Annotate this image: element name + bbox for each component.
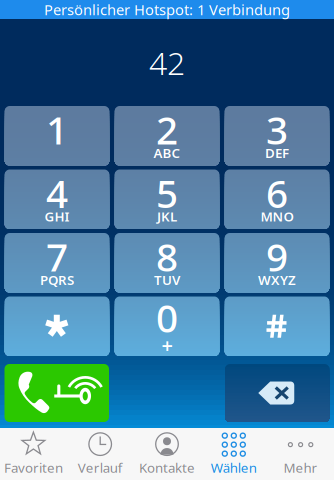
staticText: 2 xyxy=(156,104,178,155)
staticText: + xyxy=(161,332,172,359)
button[interactable]: Anrufen xyxy=(4,364,109,422)
button[interactable]: 6 xyxy=(225,169,329,229)
staticText: DEF xyxy=(265,144,289,162)
staticText: 5 xyxy=(156,167,178,219)
button[interactable]: Kontakte xyxy=(134,428,200,480)
staticText: Kontakte xyxy=(139,459,195,476)
staticText: 8 xyxy=(156,231,178,282)
button[interactable]: 0 xyxy=(115,296,219,356)
staticText: Wählen xyxy=(211,459,257,476)
staticText: 42 xyxy=(149,41,185,84)
staticText: Favoriten xyxy=(4,459,63,476)
staticText: 9 xyxy=(266,231,288,282)
staticText: 3 xyxy=(266,104,288,155)
staticText: Persönlicher Hotspot: 1 Verbindung xyxy=(44,0,290,19)
staticText: 4 xyxy=(46,167,68,219)
button[interactable]: Löschen xyxy=(225,364,329,422)
staticText: MNO xyxy=(260,207,293,225)
staticText: 6 xyxy=(266,167,288,219)
staticText: JKL xyxy=(157,207,177,225)
staticText: 1 xyxy=(46,104,68,155)
button[interactable]: Wählen xyxy=(200,428,267,480)
button[interactable]: 1 xyxy=(5,106,109,165)
button[interactable]: Favoriten xyxy=(0,428,67,480)
button[interactable]: 5 xyxy=(115,169,219,229)
button[interactable]: 7 xyxy=(5,233,109,292)
button[interactable] xyxy=(5,296,109,356)
staticText: Verlauf xyxy=(78,459,123,476)
staticText: GHI xyxy=(44,207,69,225)
button[interactable]: 2 xyxy=(115,106,219,165)
staticText: WXYZ xyxy=(258,271,296,289)
staticText: Mehr xyxy=(284,459,318,476)
staticText: PQRS xyxy=(40,271,74,289)
staticText: 7 xyxy=(46,231,68,282)
staticText: ABC xyxy=(153,144,180,162)
button[interactable]: 8 xyxy=(115,233,219,292)
button[interactable]: 3 xyxy=(225,106,329,165)
button[interactable]: Verlauf xyxy=(67,428,134,480)
button[interactable]: Mehr xyxy=(267,428,334,480)
staticText: TUV xyxy=(154,271,180,289)
staticText: 0 xyxy=(156,292,178,343)
button[interactable] xyxy=(225,296,329,356)
button[interactable]: 4 xyxy=(5,169,109,229)
button[interactable]: 9 xyxy=(225,233,329,292)
